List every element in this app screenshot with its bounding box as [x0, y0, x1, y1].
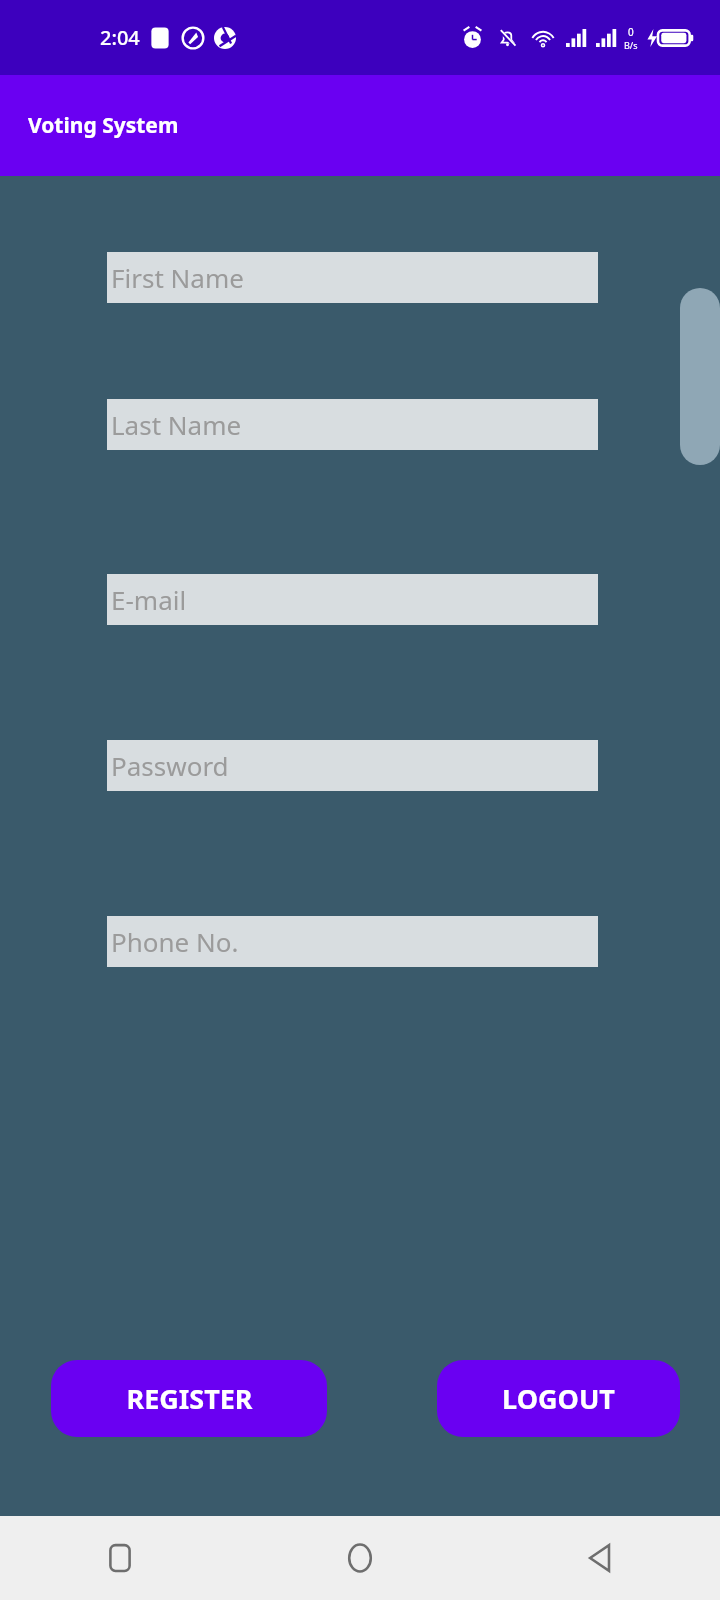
button[interactable]: First Name: [107, 252, 598, 303]
staticText: E-mail: [111, 582, 187, 617]
staticText: Password: [111, 748, 229, 783]
staticText: Voting System: [28, 111, 179, 140]
staticText: Last Name: [111, 407, 242, 442]
button[interactable]: Back: [480, 1516, 720, 1600]
button[interactable]: E-mail: [107, 574, 598, 625]
button[interactable]: Phone No.: [107, 916, 598, 967]
button[interactable]: Home: [240, 1516, 480, 1600]
staticText: REGISTER: [126, 1380, 253, 1417]
button[interactable]: LOGOUT: [437, 1360, 680, 1437]
staticText: B/s: [624, 39, 638, 51]
staticText: 0: [628, 25, 634, 39]
staticText: 2:04: [100, 24, 140, 51]
staticText: LOGOUT: [502, 1380, 615, 1417]
staticText: First Name: [111, 260, 244, 295]
button[interactable]: Last Name: [107, 399, 598, 450]
button[interactable]: Recent apps: [0, 1516, 240, 1600]
staticText: Phone No.: [111, 924, 239, 959]
button[interactable]: REGISTER: [51, 1360, 327, 1437]
button[interactable]: Password: [107, 740, 598, 791]
